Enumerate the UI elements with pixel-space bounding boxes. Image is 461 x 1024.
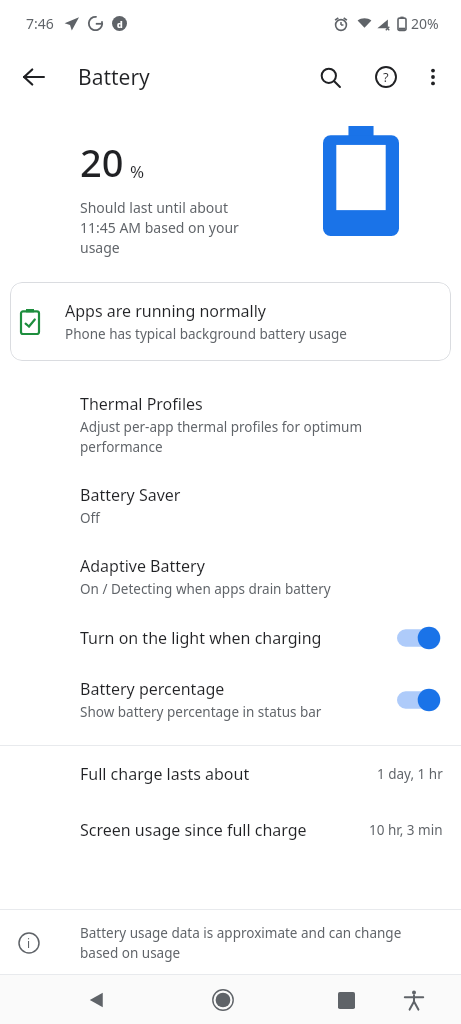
staticText: Battery bbox=[78, 63, 150, 92]
staticText: Battery percentage bbox=[80, 678, 225, 700]
button[interactable]: Apps are running normally bbox=[10, 282, 451, 361]
staticText: On / Detecting when apps drain battery bbox=[80, 580, 331, 598]
button[interactable]: Accessibility bbox=[390, 976, 438, 1024]
staticText: i bbox=[27, 935, 31, 951]
staticText: Apps are running normally bbox=[65, 300, 266, 322]
staticText: Off bbox=[80, 509, 100, 527]
button[interactable]: Thermal Profiles bbox=[0, 379, 461, 470]
staticText: % bbox=[130, 160, 145, 183]
staticText: d bbox=[117, 18, 123, 30]
staticText: Screen usage since full charge bbox=[80, 819, 307, 841]
button[interactable]: Recent apps bbox=[322, 976, 370, 1024]
button[interactable]: Battery percentage bbox=[0, 664, 461, 735]
staticText: Battery Saver bbox=[80, 484, 181, 506]
button[interactable]: Battery Saver bbox=[0, 470, 461, 541]
staticText: 1 day, 1 hr bbox=[377, 765, 443, 783]
staticText: 10 hr, 3 min bbox=[369, 821, 443, 839]
button[interactable]: Adaptive Battery bbox=[0, 541, 461, 612]
staticText: Battery usage data is approximate and ca… bbox=[80, 924, 402, 962]
button[interactable]: Help bbox=[363, 54, 409, 100]
staticText: Full charge lasts about bbox=[80, 763, 250, 785]
staticText: Show battery percentage in status bar bbox=[80, 703, 322, 721]
button[interactable]: Screen usage since full charge bbox=[0, 802, 461, 858]
staticText: 20 bbox=[80, 136, 124, 188]
button[interactable]: Full charge lasts about bbox=[0, 746, 461, 802]
staticText: Adaptive Battery bbox=[80, 555, 205, 577]
button[interactable]: More options bbox=[411, 55, 455, 99]
staticText: 20% bbox=[411, 14, 439, 33]
staticText: Turn on the light when charging bbox=[80, 627, 322, 649]
staticText: ? bbox=[383, 68, 389, 86]
button[interactable]: Turn on the light when charging bbox=[0, 612, 461, 664]
staticText: Phone has typical background battery usa… bbox=[65, 325, 347, 343]
staticText: Adjust per-app thermal profiles for opti… bbox=[80, 418, 441, 456]
button[interactable]: Back bbox=[10, 53, 58, 101]
staticText: Should last until about 11:45 AM based o… bbox=[80, 198, 239, 257]
staticText: 7:46 bbox=[26, 14, 54, 33]
button[interactable]: Search bbox=[307, 54, 353, 100]
button[interactable]: Back bbox=[73, 976, 121, 1024]
button[interactable]: Home bbox=[199, 976, 247, 1024]
staticText: Thermal Profiles bbox=[80, 393, 203, 415]
